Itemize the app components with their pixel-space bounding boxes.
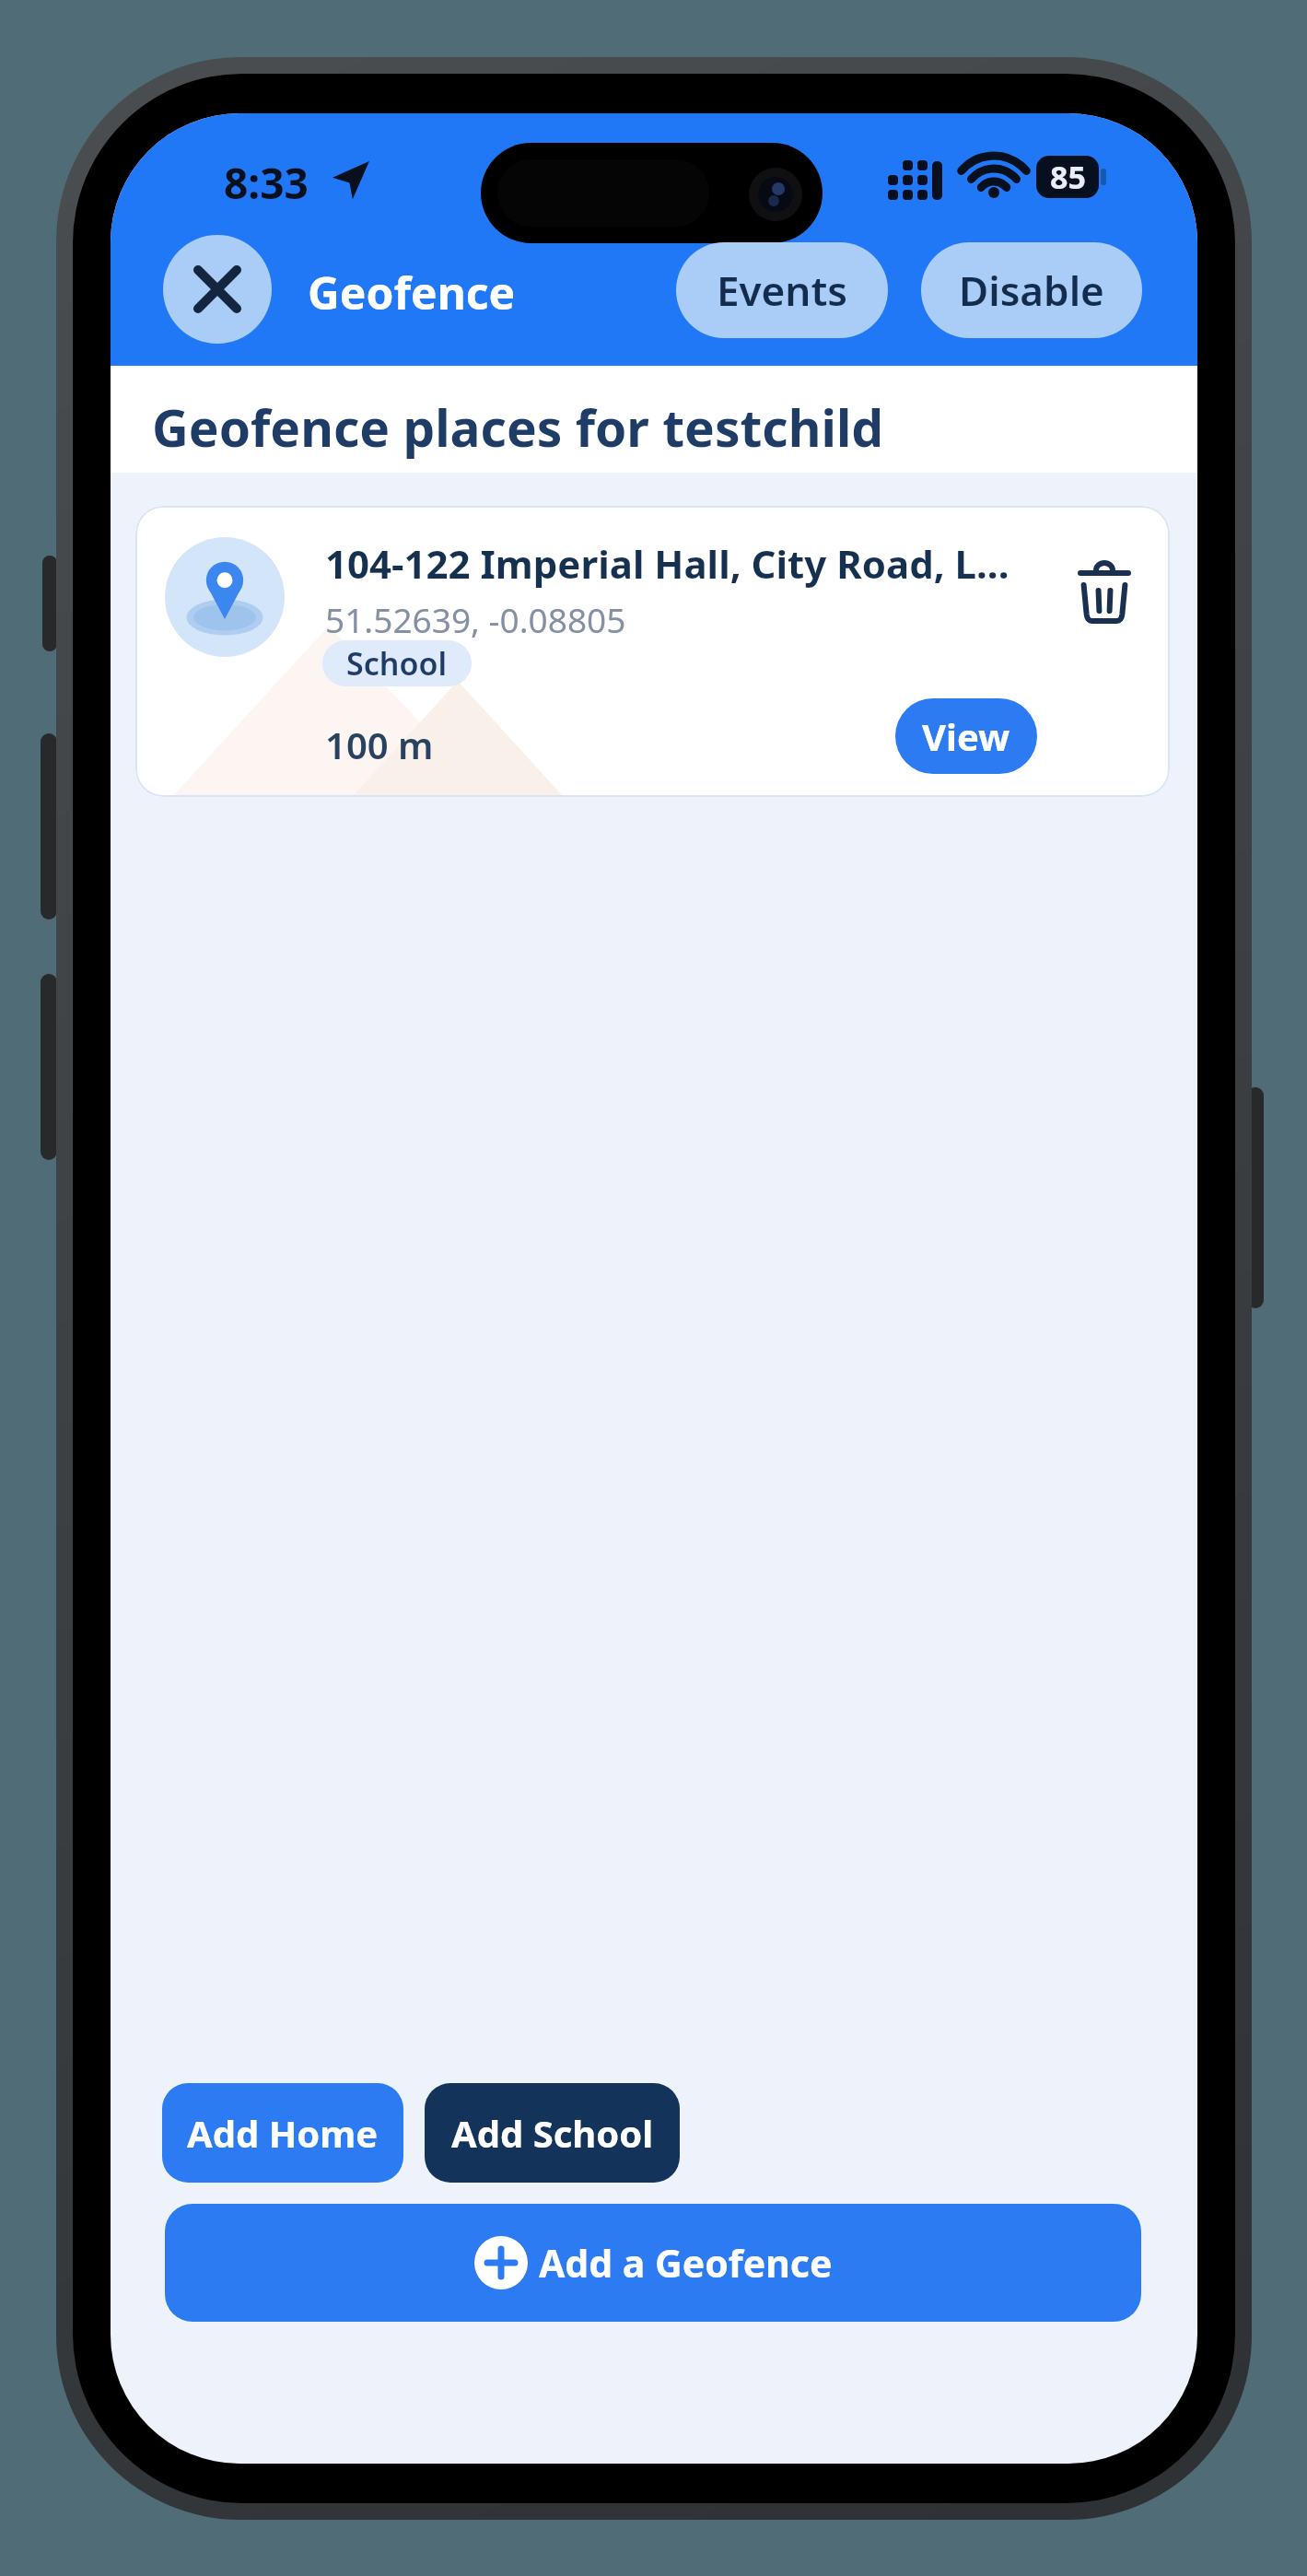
staticText: School (346, 642, 448, 685)
button[interactable]: Add School (425, 2083, 680, 2183)
staticText: View (922, 711, 1010, 761)
staticText: Events (717, 263, 847, 318)
staticText: 51.52639, -0.08805 (325, 596, 626, 642)
button[interactable]: Add Home (162, 2083, 403, 2183)
button[interactable] (163, 235, 272, 344)
button[interactable]: View (895, 698, 1037, 774)
staticText: 85 (1050, 156, 1086, 198)
button[interactable]: Events (676, 242, 888, 338)
staticText: 8:33 (224, 154, 309, 212)
button[interactable]: Disable (921, 242, 1142, 338)
staticText: Add Home (187, 2108, 379, 2158)
button[interactable]: Add a Geofence (165, 2204, 1141, 2322)
button[interactable]: 104-122 Imperial Hall, City Road, L... (135, 506, 1170, 797)
staticText: Geofence (308, 263, 516, 322)
staticText: 104-122 Imperial Hall, City Road, L... (325, 537, 1009, 590)
staticText: 100 m (325, 720, 434, 769)
staticText: Geofence places for testchild (152, 392, 884, 462)
staticText: Disable (959, 263, 1104, 318)
staticText: Add a Geofence (539, 2237, 833, 2289)
button[interactable] (1079, 561, 1130, 624)
staticText: Add School (451, 2108, 654, 2158)
